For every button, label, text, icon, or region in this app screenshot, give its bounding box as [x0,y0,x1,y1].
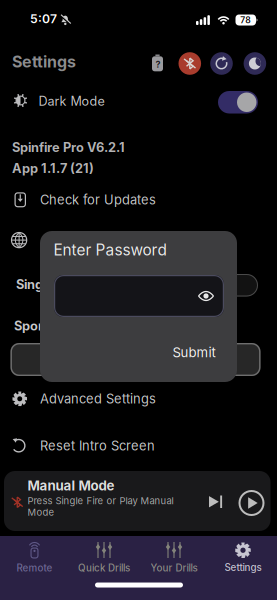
button[interactable]: Show password [198,290,214,301]
staticText: Advanced Settings [40,391,156,407]
staticText: Settings [224,561,261,573]
staticText: Single Fire Mode [16,276,120,292]
staticText: 78 [240,15,251,25]
button[interactable]: Dark Mode [218,91,258,113]
staticText: Settings [12,52,76,71]
staticText: ? [155,59,160,70]
staticText: Dark Mode [38,93,104,109]
button[interactable]: Check for Updates [14,192,156,208]
staticText: Submit [172,344,215,360]
staticText: Enter Password [53,240,166,259]
button[interactable]: Bluetooth [178,52,201,75]
staticText: 5:07 [30,11,57,26]
staticText: Reset Intro Screen [40,438,155,453]
staticText: Check for Updates [40,192,156,208]
staticText: Quick Drills [78,562,130,574]
staticText: Manual Mode [27,477,114,494]
button[interactable]: Advanced Settings [12,391,156,407]
button[interactable]: Your Drills [139,542,209,574]
button[interactable]: Play [238,490,264,516]
button[interactable]: Skip [209,495,222,508]
staticText: App 1.1.7 (21) [12,160,94,176]
staticText: Spinfire Pro V6.2.1 [12,139,125,155]
button[interactable]: Remote [0,542,69,574]
button[interactable]: Refresh [210,52,233,75]
button[interactable]: Reset Intro Screen [10,437,155,454]
button[interactable]: Dark mode [244,52,266,75]
staticText: Your Drills [150,562,197,574]
staticText: Press Single Fire or Play Manual Mode [27,495,173,518]
button[interactable]: Quick Drills [69,542,139,574]
button[interactable]: Settings [209,542,277,573]
staticText: Remote [16,562,52,574]
staticText: Sport [14,318,48,333]
button[interactable]: Submit [172,344,215,360]
